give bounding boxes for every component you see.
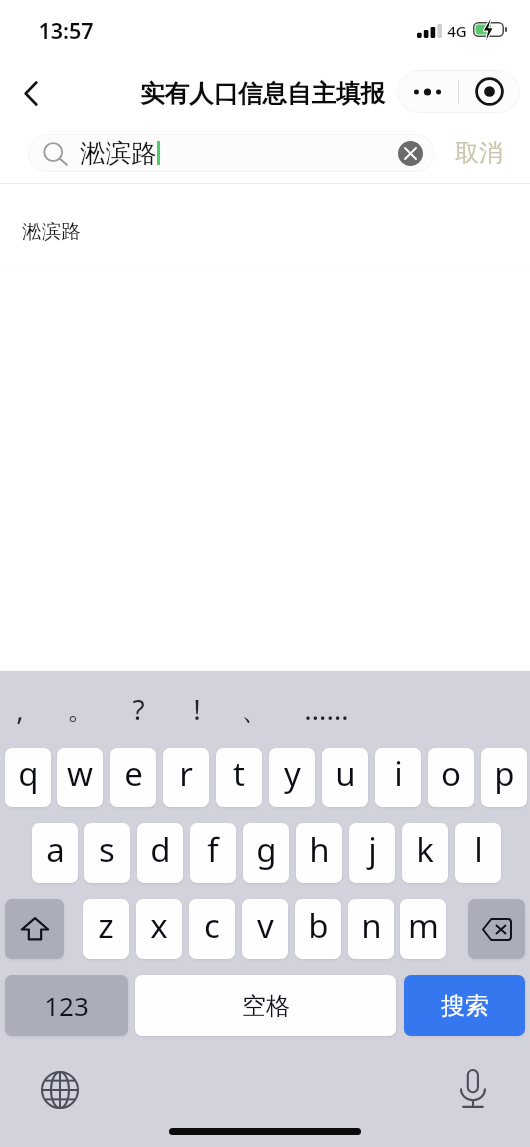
- staticText: y: [284, 751, 301, 796]
- button[interactable]: 淞滨路: [28, 134, 435, 172]
- button[interactable]: i: [375, 748, 421, 807]
- staticText: 取消: [455, 138, 503, 168]
- button[interactable]: ?: [112, 684, 164, 734]
- staticText: g: [256, 827, 277, 872]
- button[interactable]: Shift: [5, 899, 64, 959]
- button[interactable]: f: [190, 823, 236, 883]
- button[interactable]: Switch language: [36, 1066, 84, 1114]
- staticText: 123: [44, 988, 89, 1023]
- button[interactable]: z: [83, 899, 129, 959]
- staticText: o: [441, 751, 461, 796]
- button[interactable]: g: [243, 823, 289, 883]
- button[interactable]: y: [269, 748, 315, 807]
- button[interactable]: w: [57, 748, 103, 807]
- button[interactable]: 取消: [443, 134, 515, 172]
- staticText: 淞滨路: [22, 219, 81, 244]
- button[interactable]: 、: [229, 684, 281, 734]
- staticText: d: [150, 827, 171, 872]
- staticText: 4G: [447, 21, 467, 41]
- button[interactable]: h: [296, 823, 342, 883]
- button[interactable]: ,: [0, 684, 46, 734]
- staticText: r: [179, 751, 193, 796]
- staticText: ……: [304, 690, 349, 728]
- staticText: x: [150, 903, 168, 948]
- staticText: 实有人口信息自主填报: [140, 78, 385, 109]
- staticText: h: [309, 827, 330, 872]
- staticText: 搜索: [441, 991, 489, 1021]
- button[interactable]: v: [242, 899, 288, 959]
- staticText: t: [233, 751, 245, 796]
- staticText: c: [204, 903, 220, 948]
- staticText: b: [308, 903, 329, 948]
- staticText: a: [46, 827, 65, 872]
- staticText: s: [99, 827, 115, 872]
- button[interactable]: 搜索: [404, 975, 525, 1036]
- staticText: 。: [67, 692, 95, 727]
- button[interactable]: Voice input: [448, 1063, 498, 1113]
- button[interactable]: s: [84, 823, 130, 883]
- button[interactable]: b: [295, 899, 341, 959]
- button[interactable]: n: [348, 899, 394, 959]
- button[interactable]: p: [481, 748, 527, 807]
- button[interactable]: 空格: [135, 975, 396, 1036]
- staticText: 淞滨路: [80, 137, 157, 169]
- staticText: j: [368, 827, 377, 872]
- staticText: i: [394, 751, 403, 796]
- button[interactable]: l: [455, 823, 501, 883]
- staticText: z: [98, 903, 114, 948]
- button[interactable]: d: [137, 823, 183, 883]
- button[interactable]: t: [216, 748, 262, 807]
- button[interactable]: 123: [5, 975, 128, 1036]
- staticText: 13:57: [38, 16, 94, 45]
- button[interactable]: Backspace: [468, 899, 525, 959]
- button[interactable]: a: [32, 823, 78, 883]
- button[interactable]: o: [428, 748, 474, 807]
- button[interactable]: 。: [55, 684, 107, 734]
- staticText: w: [67, 751, 93, 796]
- button[interactable]: !: [171, 684, 223, 734]
- button[interactable]: Close: [459, 70, 520, 113]
- button[interactable]: u: [322, 748, 368, 807]
- staticText: !: [193, 690, 201, 728]
- staticText: m: [408, 903, 439, 948]
- staticText: q: [18, 751, 39, 796]
- button[interactable]: More: [397, 70, 458, 113]
- staticText: e: [124, 751, 143, 796]
- button[interactable]: x: [136, 899, 182, 959]
- staticText: k: [416, 827, 434, 872]
- staticText: f: [207, 827, 219, 872]
- staticText: v: [257, 903, 274, 948]
- staticText: 、: [241, 692, 269, 727]
- staticText: n: [361, 903, 382, 948]
- button[interactable]: 淞滨路: [0, 184, 530, 270]
- button[interactable]: ……: [300, 684, 352, 734]
- button[interactable]: m: [400, 899, 446, 959]
- staticText: u: [335, 751, 356, 796]
- button[interactable]: c: [189, 899, 235, 959]
- staticText: l: [474, 827, 483, 872]
- button[interactable]: r: [163, 748, 209, 807]
- button[interactable]: j: [349, 823, 395, 883]
- button[interactable]: e: [110, 748, 156, 807]
- staticText: 空格: [242, 991, 290, 1021]
- button[interactable]: Back: [6, 68, 56, 118]
- staticText: ?: [132, 690, 145, 728]
- button[interactable]: k: [402, 823, 448, 883]
- staticText: ,: [16, 690, 24, 728]
- button[interactable]: Clear: [398, 141, 423, 166]
- button[interactable]: q: [5, 748, 51, 807]
- staticText: p: [494, 751, 515, 796]
